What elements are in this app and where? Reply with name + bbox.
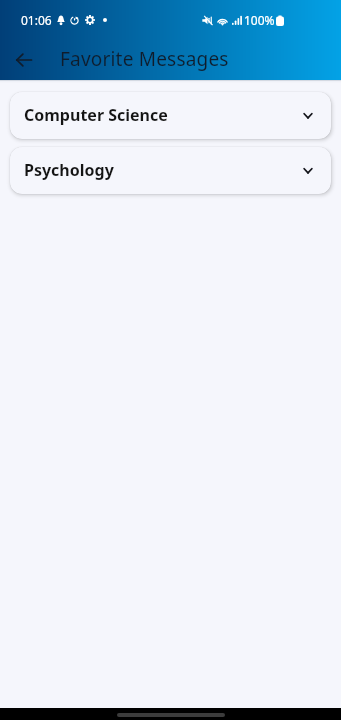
staticText: Favorite Messages (60, 46, 229, 72)
staticText: 01:06 (21, 12, 52, 28)
staticText: 100% (244, 12, 275, 28)
button[interactable]: Back (5, 41, 42, 78)
button[interactable]: Computer Science (10, 92, 331, 139)
button[interactable]: Psychology (10, 147, 331, 194)
staticText: Psychology (24, 159, 114, 181)
staticText: Computer Science (24, 104, 168, 126)
